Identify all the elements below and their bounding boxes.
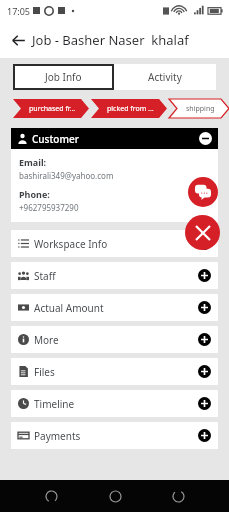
button[interactable]: Customer bbox=[11, 128, 218, 149]
staticText: picked from ... bbox=[107, 104, 154, 114]
staticText: Activity bbox=[148, 70, 182, 84]
button[interactable]: Expand More bbox=[198, 333, 211, 346]
button[interactable]: picked from ... bbox=[91, 99, 167, 118]
button[interactable]: shipping bbox=[169, 99, 229, 118]
button[interactable]: Workspace Info bbox=[11, 230, 218, 257]
staticText: Workspace Info bbox=[34, 237, 108, 251]
button[interactable]: Collapse bbox=[199, 132, 212, 145]
staticText: bashirali349@yahoo.com bbox=[19, 170, 114, 181]
button[interactable]: Expand Files bbox=[198, 365, 211, 378]
button[interactable]: Close bbox=[185, 215, 220, 250]
button[interactable]: Expand Workspace Info bbox=[198, 237, 211, 250]
staticText: Job - Basher Naser khalaf bbox=[32, 31, 189, 49]
button[interactable]: purchased fr... bbox=[13, 99, 89, 118]
button[interactable]: Recents bbox=[38, 483, 64, 509]
staticText: Actual Amount bbox=[34, 301, 104, 315]
staticText: Staff bbox=[34, 269, 56, 283]
staticText: shipping bbox=[186, 104, 215, 114]
button[interactable]: Payments bbox=[11, 422, 218, 449]
button[interactable]: Expand Staff bbox=[198, 269, 211, 282]
button[interactable]: More bbox=[11, 326, 218, 353]
button[interactable]: Home bbox=[102, 483, 128, 509]
button[interactable]: Staff bbox=[11, 262, 218, 289]
staticText: +962795937290 bbox=[19, 202, 79, 213]
button[interactable]: Job Info bbox=[13, 64, 114, 90]
staticText: Email: bbox=[19, 156, 47, 168]
staticText: More bbox=[34, 333, 59, 347]
button[interactable]: Timeline bbox=[11, 390, 218, 417]
button[interactable]: Activity bbox=[114, 64, 216, 90]
staticText: Payments bbox=[34, 429, 81, 443]
button[interactable]: Files bbox=[11, 358, 218, 385]
staticText: Phone: bbox=[19, 188, 50, 200]
button[interactable]: Expand Actual Amount bbox=[198, 301, 211, 314]
button[interactable]: Back bbox=[4, 26, 32, 54]
button[interactable]: Actual Amount bbox=[11, 294, 218, 321]
staticText: Timeline bbox=[34, 397, 75, 411]
button[interactable]: Back bbox=[165, 483, 191, 509]
staticText: Customer bbox=[32, 132, 79, 146]
staticText: purchased fr... bbox=[29, 104, 76, 114]
button[interactable]: Expand Payments bbox=[198, 429, 211, 442]
staticText: Job Info bbox=[45, 70, 82, 84]
staticText: Files bbox=[34, 365, 55, 379]
button[interactable]: Expand Timeline bbox=[198, 397, 211, 410]
staticText: 17:05 bbox=[7, 5, 31, 17]
button[interactable]: Chat bbox=[188, 177, 218, 207]
